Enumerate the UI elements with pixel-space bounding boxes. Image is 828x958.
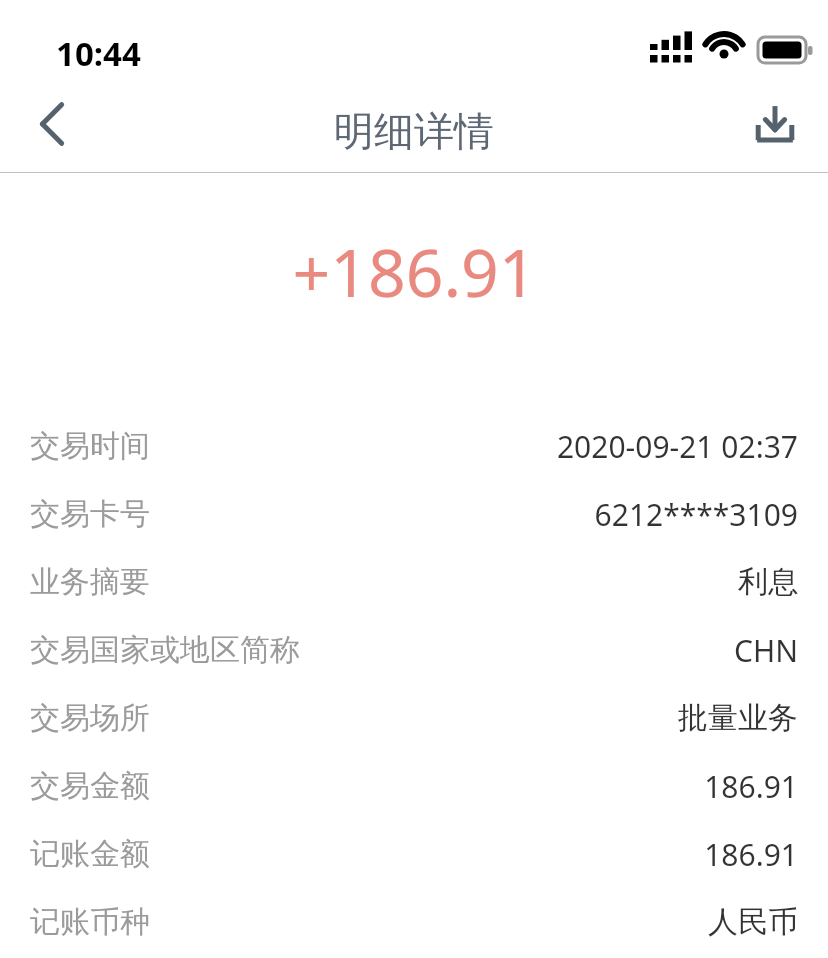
staticText: CHN <box>734 630 798 671</box>
staticText: 186.91 <box>704 834 798 875</box>
staticText: +186.91 <box>292 226 537 316</box>
staticText: 明细详情 <box>334 106 494 156</box>
staticText: 人民币 <box>708 903 798 941</box>
staticText: 186.91 <box>704 766 798 807</box>
button[interactable]: 交易场所 <box>0 684 828 752</box>
staticText: 交易国家或地区简称 <box>30 631 300 669</box>
staticText: 交易场所 <box>30 699 150 737</box>
staticText: 记账币种 <box>30 903 150 941</box>
button[interactable]: 交易卡号 <box>0 480 828 548</box>
staticText: 交易卡号 <box>30 495 150 533</box>
staticText: 交易金额 <box>30 767 150 805</box>
button[interactable]: Download <box>736 86 814 164</box>
button[interactable]: 业务摘要 <box>0 548 828 616</box>
staticText: 业务摘要 <box>30 563 150 601</box>
staticText: 记账金额 <box>30 835 150 873</box>
staticText: 2020-09-21 02:37 <box>556 426 798 467</box>
staticText: 6212****3109 <box>594 494 798 535</box>
button[interactable]: 交易时间 <box>0 412 828 480</box>
button[interactable]: 交易金额 <box>0 752 828 820</box>
button[interactable]: 记账金额 <box>0 820 828 888</box>
button[interactable]: 记账币种 <box>0 888 828 956</box>
staticText: 批量业务 <box>678 699 798 737</box>
staticText: 10:44 <box>56 31 141 76</box>
staticText: 交易时间 <box>30 427 150 465</box>
button[interactable]: Back <box>12 84 92 164</box>
button[interactable]: 交易国家或地区简称 <box>0 616 828 684</box>
staticText: 利息 <box>738 563 798 601</box>
